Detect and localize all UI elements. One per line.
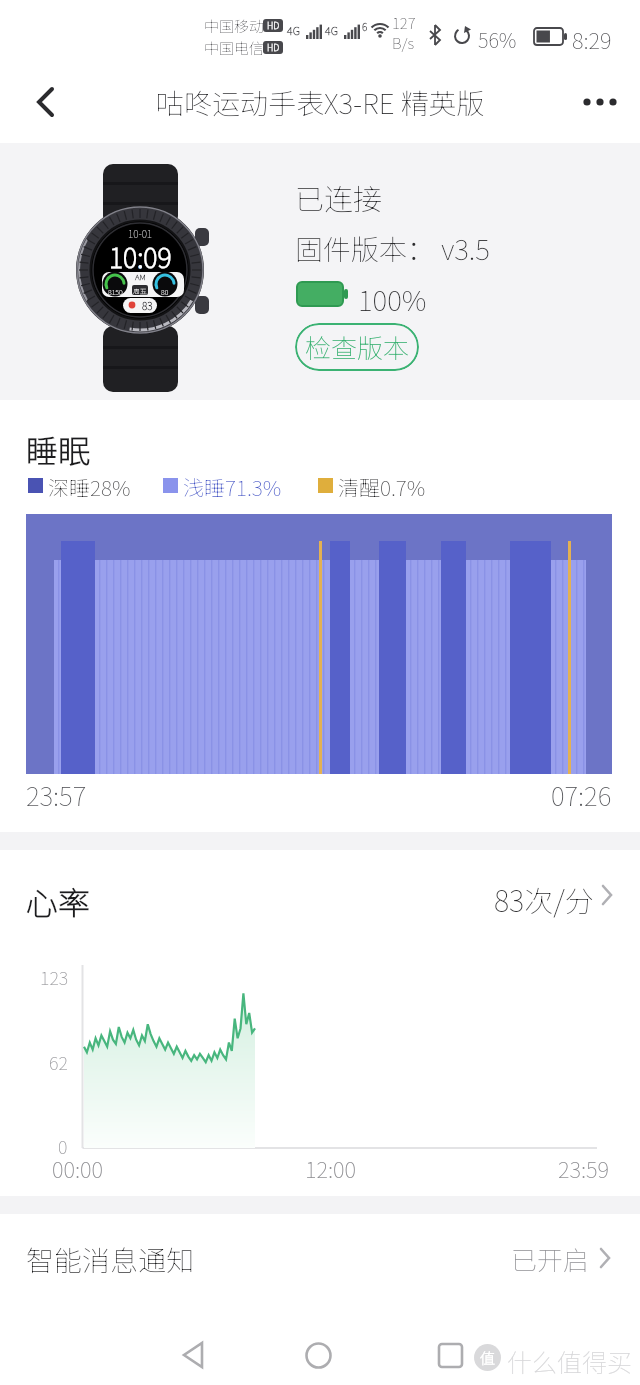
staticText: 中国移动 [204,15,264,37]
button[interactable] [575,78,625,126]
staticText: 100% [358,279,427,309]
staticText: 0 [58,1133,68,1155]
staticText: 56% [478,25,517,49]
staticText: 心率 [26,878,91,912]
staticText: B/s [392,32,415,50]
staticText: 中国电信 [204,37,264,59]
staticText: AM [135,271,146,282]
staticText: 已开启 [511,1240,590,1278]
staticText: 固件版本： v3.5 [295,228,490,258]
staticText: 123 [40,964,68,986]
staticText: 浅睡71.3% [183,472,282,498]
staticText: 4G [325,22,339,36]
staticText: 咕咚运动手表X3-RE 精英版 [156,82,485,123]
staticText: 07:26 [551,776,612,804]
button[interactable]: 检查版本 [295,323,419,371]
staticText: 已连接 [295,176,383,206]
staticText: 4G [287,22,301,36]
staticText: HD [267,41,280,54]
staticText: 83 [142,298,153,312]
button[interactable] [20,78,72,126]
staticText: 什么值得买 [507,1343,633,1373]
staticText: 127 [392,12,416,30]
button[interactable]: 心率 [26,878,226,912]
staticText: 80 [161,287,169,297]
staticText: 00:00 [52,1152,103,1178]
button[interactable] [417,1330,483,1380]
staticText: 23:59 [558,1152,609,1178]
staticText: 23:57 [26,776,87,804]
staticText: 智能消息通知 [26,1239,195,1280]
button[interactable] [160,1330,226,1380]
staticText: 10-01 [128,226,153,239]
staticText: 6 [362,19,368,31]
staticText: 62 [49,1049,68,1071]
staticText: 检查版本 [305,328,410,366]
staticText: 深睡28% [48,472,131,498]
staticText: 睡眠 [26,426,91,460]
staticText: 值 [480,1347,496,1369]
staticText: 周五 [133,286,147,295]
staticText: 8:29 [572,23,612,49]
staticText: 83次/分 [494,878,594,912]
button[interactable] [285,1330,351,1380]
staticText: 10:09 [109,237,172,267]
staticText: 8150 [108,287,123,297]
staticText: 12:00 [305,1152,356,1178]
button[interactable]: 智能消息通知 [0,1224,640,1294]
staticText: HD [267,19,280,32]
staticText: 清醒0.7% [338,472,426,498]
